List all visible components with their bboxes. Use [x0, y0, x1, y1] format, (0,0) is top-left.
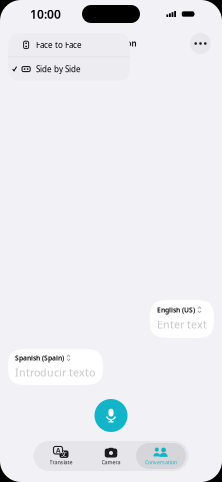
button[interactable]: A — [36, 443, 86, 469]
staticText: Camera — [101, 459, 120, 466]
staticText: Conversation — [145, 459, 177, 466]
button[interactable]: More options — [185, 28, 216, 59]
staticText: English (US) — [157, 305, 195, 314]
staticText: Face to Face — [36, 39, 82, 50]
staticText: Introducir texto — [15, 365, 95, 379]
staticText: A — [56, 446, 60, 455]
staticText: 文 — [60, 450, 67, 458]
button[interactable]: English (US) — [150, 300, 214, 338]
staticText: Enter text — [157, 317, 207, 331]
button[interactable]: Face to Face — [8, 33, 130, 57]
staticText: Spanish (Spain) — [15, 353, 64, 362]
button[interactable]: Camera — [86, 443, 136, 469]
button[interactable]: Side by Side — [8, 57, 130, 81]
button[interactable]: Start recording — [94, 399, 127, 432]
button[interactable]: Conversation — [136, 443, 186, 469]
staticText: 10:00 — [30, 6, 61, 22]
staticText: Translate — [49, 459, 72, 466]
button[interactable]: Spanish (Spain) — [8, 349, 103, 385]
staticText: Conversation — [85, 38, 136, 49]
staticText: Side by Side — [36, 64, 81, 74]
